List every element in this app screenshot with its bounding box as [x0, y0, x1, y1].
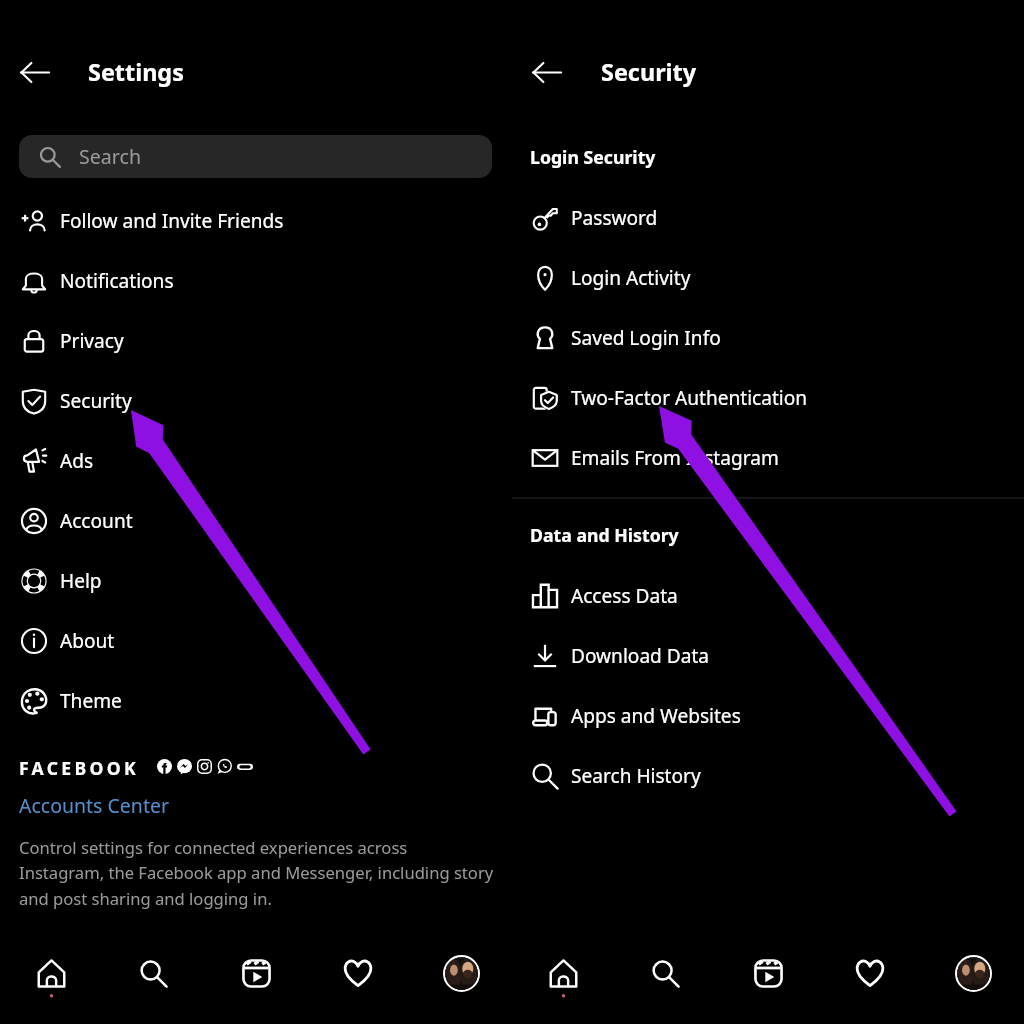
staticText: Notifications	[60, 268, 174, 294]
staticText: Login Activity	[571, 265, 691, 291]
button[interactable]: Access Data	[531, 570, 991, 622]
staticText: Account	[60, 508, 133, 534]
staticText: Saved Login Info	[571, 325, 721, 351]
button[interactable]: Login Activity	[531, 252, 991, 304]
staticText: About	[60, 628, 115, 654]
button[interactable]: Download Data	[531, 630, 991, 682]
button[interactable]: Security	[20, 375, 480, 427]
staticText: Search History	[571, 763, 701, 789]
button[interactable]: Follow and Invite Friends	[20, 195, 480, 247]
button[interactable]: Account	[20, 495, 480, 547]
staticText: Security	[60, 388, 132, 414]
staticText: Password	[571, 205, 658, 231]
staticText: Access Data	[571, 583, 678, 609]
button[interactable]: Ads	[20, 435, 480, 487]
staticText: Accounts Center	[19, 792, 169, 819]
button[interactable]: Search	[127, 947, 179, 999]
button[interactable]: About	[20, 615, 480, 667]
staticText: Security	[601, 56, 697, 88]
button[interactable]: Apps and Websites	[531, 690, 991, 742]
staticText: Ads	[60, 448, 94, 474]
button[interactable]: Search	[19, 135, 492, 178]
button[interactable]: Search History	[531, 750, 991, 802]
button[interactable]: Search	[639, 947, 691, 999]
staticText: Follow and Invite Friends	[60, 208, 284, 234]
button[interactable]: Emails From Instagram	[531, 432, 991, 484]
button[interactable]: Profile	[435, 947, 487, 999]
staticText: Emails From Instagram	[571, 445, 779, 471]
staticText: Privacy	[60, 328, 124, 354]
button[interactable]: Profile	[947, 947, 999, 999]
button[interactable]: Password	[531, 192, 991, 244]
staticText: Data and History	[530, 523, 679, 547]
staticText: Theme	[60, 688, 122, 714]
button[interactable]: Saved Login Info	[531, 312, 991, 364]
button[interactable]: Reels	[230, 947, 282, 999]
button[interactable]: Privacy	[20, 315, 480, 367]
staticText: Search	[79, 143, 142, 170]
button[interactable]: Two-Factor Authentication	[531, 372, 991, 424]
staticText: Settings	[88, 56, 184, 88]
staticText: Control settings for connected experienc…	[19, 836, 494, 910]
staticText: Login Security	[530, 145, 656, 169]
button[interactable]: Activity	[332, 947, 384, 999]
button[interactable]: Activity	[844, 947, 896, 999]
staticText: Download Data	[571, 643, 710, 669]
button[interactable]: Accounts Center	[19, 792, 169, 819]
button[interactable]: Notifications	[20, 255, 480, 307]
staticText: Apps and Websites	[571, 703, 741, 729]
button[interactable]: Home	[537, 947, 589, 999]
button[interactable]: Home	[25, 947, 77, 999]
staticText: Two-Factor Authentication	[571, 385, 808, 411]
button[interactable]: Theme	[20, 675, 480, 727]
staticText: Help	[60, 568, 102, 594]
button[interactable]: Back	[522, 48, 570, 96]
button[interactable]: Reels	[742, 947, 794, 999]
button[interactable]: Help	[20, 555, 480, 607]
button[interactable]: Back	[10, 48, 58, 96]
staticText: FACEBOOK	[19, 756, 139, 780]
